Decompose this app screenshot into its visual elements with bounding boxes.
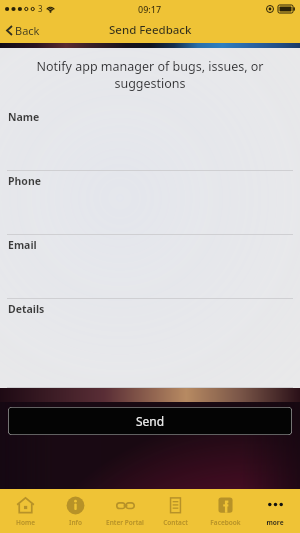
button[interactable]: Email: [0, 235, 300, 299]
staticText: Name: [8, 110, 40, 124]
staticText: Enter Portal: [106, 518, 144, 527]
staticText: Send Feedback: [109, 22, 192, 38]
staticText: Send: [136, 413, 165, 429]
staticText: 3: [38, 3, 43, 14]
staticText: more: [266, 518, 284, 527]
button[interactable]: Details: [0, 299, 300, 362]
staticText: 09:17: [138, 3, 162, 15]
staticText: Info: [69, 518, 82, 527]
button[interactable]: Facebook: [200, 489, 250, 533]
button[interactable]: Enter Portal: [100, 489, 150, 533]
staticText: Back: [15, 23, 40, 38]
button[interactable]: Phone: [0, 171, 300, 235]
button[interactable]: Back: [0, 17, 48, 43]
staticText: Notify app manager of bugs, issues, or s…: [26, 58, 274, 92]
button[interactable]: more: [250, 489, 300, 533]
button[interactable]: Name: [0, 107, 300, 171]
staticText: Contact: [163, 518, 188, 527]
staticText: Home: [16, 518, 35, 527]
staticText: Details: [8, 302, 45, 316]
staticText: Facebook: [210, 518, 241, 527]
button[interactable]: Home: [0, 489, 50, 533]
button[interactable]: Info: [50, 489, 100, 533]
button[interactable]: Contact: [150, 489, 200, 533]
staticText: Email: [8, 238, 37, 252]
staticText: Phone: [8, 174, 42, 188]
button[interactable]: Send: [8, 407, 292, 435]
